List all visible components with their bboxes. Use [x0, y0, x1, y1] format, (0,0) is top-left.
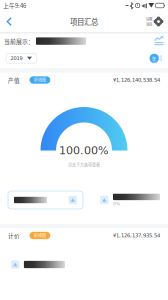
staticText: 产值: [8, 76, 20, 84]
staticText: 折线图: [34, 77, 46, 83]
button[interactable]: [8, 191, 83, 209]
staticText: 上午9:46: [3, 1, 26, 10]
staticText: 项目汇总: [70, 16, 98, 27]
staticText: 设置: [146, 16, 152, 21]
button[interactable]: 返回: [2, 14, 16, 29]
button[interactable]: 2019: [6, 53, 37, 63]
staticText: 100.00%: [59, 144, 109, 157]
staticText: 2019: [11, 55, 23, 61]
staticText: ¥1,126,137,935.54: [113, 232, 160, 239]
button[interactable]: 趋势图: [154, 36, 164, 46]
staticText: 点击下方选项查看: [68, 162, 100, 168]
button[interactable]: 折线图: [29, 232, 50, 239]
button[interactable]: 折线图: [29, 76, 50, 84]
button[interactable]: 按年统计: [150, 54, 162, 63]
staticText: 项目: [146, 22, 152, 27]
staticText: 当前展示：: [4, 37, 34, 45]
staticText: 年: [152, 55, 157, 62]
button[interactable]: 设置项目: [144, 14, 165, 29]
staticText: 计价: [8, 231, 20, 239]
staticText: ¥1,126,140,538.54: [113, 77, 160, 83]
button[interactable]: 0%: [100, 191, 160, 209]
staticText: 0%: [113, 201, 120, 206]
staticText: 折线图: [34, 233, 46, 238]
